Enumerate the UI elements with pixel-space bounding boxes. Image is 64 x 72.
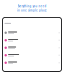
button[interactable] [3, 44, 61, 51]
button[interactable] [3, 29, 61, 36]
staticText: Everything you need [17, 4, 46, 8]
staticText: in one simple place [17, 9, 47, 12]
button[interactable] [3, 51, 61, 59]
button[interactable] [3, 36, 61, 44]
button[interactable] [3, 59, 61, 66]
